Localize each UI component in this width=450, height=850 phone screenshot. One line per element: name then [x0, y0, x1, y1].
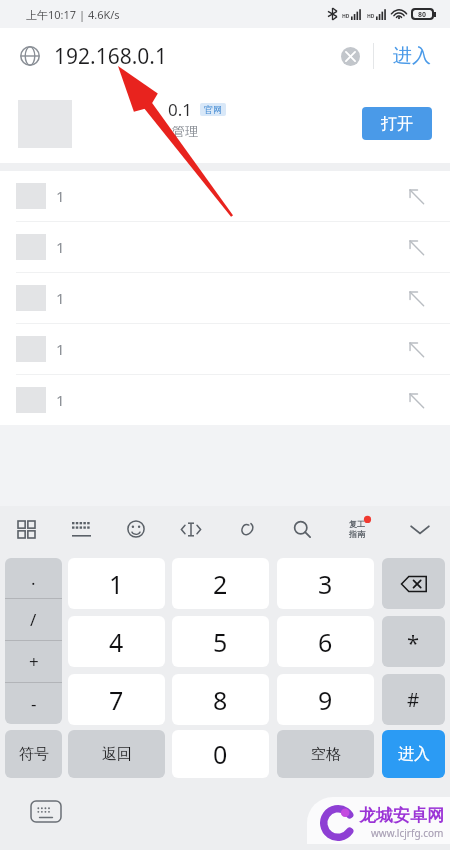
staticText: 2: [213, 567, 228, 601]
button[interactable]: 1: [68, 558, 165, 609]
staticText: 1: [56, 288, 65, 308]
staticText: 返回: [102, 745, 132, 764]
staticText: 指南: [349, 529, 365, 539]
staticText: 1: [109, 567, 124, 601]
staticText: 符号: [19, 745, 49, 764]
button[interactable]: 7: [68, 674, 165, 725]
button[interactable]: Clear: [327, 33, 373, 79]
button[interactable]: 9: [277, 674, 374, 725]
staticText: HD: [367, 13, 375, 20]
button[interactable]: Fill suggestion: [400, 384, 432, 416]
staticText: 龙城安卓网: [359, 805, 444, 826]
staticText: -: [31, 692, 37, 715]
button[interactable]: Fill suggestion: [400, 282, 432, 314]
button[interactable]: Emoji: [116, 509, 156, 549]
button[interactable]: Search: [282, 509, 322, 549]
staticText: 上午10:17 | 4.6K/s: [26, 7, 120, 22]
button[interactable]: 0: [172, 730, 269, 778]
button[interactable]: .: [5, 558, 62, 598]
button[interactable]: Hide keyboard: [400, 509, 440, 549]
staticText: 3: [318, 567, 333, 601]
button[interactable]: 1: [0, 375, 450, 425]
staticText: www.lcjrfg.com: [371, 826, 444, 840]
staticText: 6: [318, 625, 333, 659]
staticText: 5: [213, 625, 228, 659]
button[interactable]: 返回: [68, 730, 165, 778]
staticText: #: [407, 687, 420, 713]
staticText: 4: [109, 625, 124, 659]
button[interactable]: Backspace: [382, 558, 445, 609]
staticText: 1: [56, 390, 65, 410]
button[interactable]: *: [382, 616, 445, 667]
staticText: 官网: [204, 104, 222, 115]
button[interactable]: 进入: [382, 730, 445, 778]
staticText: 0.1: [168, 98, 193, 121]
staticText: 0: [213, 737, 228, 771]
button[interactable]: #: [382, 674, 445, 725]
staticText: 进入: [393, 44, 431, 68]
button[interactable]: 8: [172, 674, 269, 725]
staticText: 1: [56, 186, 65, 206]
button[interactable]: 1: [0, 324, 450, 374]
button[interactable]: /: [5, 599, 62, 640]
button[interactable]: Clipboard: [227, 509, 267, 549]
button[interactable]: 5: [172, 616, 269, 667]
button[interactable]: 1: [0, 171, 450, 221]
staticText: 9: [318, 683, 333, 717]
button[interactable]: 符号: [5, 730, 62, 778]
staticText: .: [31, 567, 36, 590]
button[interactable]: Fill suggestion: [400, 231, 432, 263]
button[interactable]: Guide: [337, 509, 377, 549]
staticText: *: [407, 627, 420, 657]
staticText: 复工: [349, 519, 365, 529]
button[interactable]: Apps: [6, 509, 46, 549]
button[interactable]: Keyboard layout: [61, 509, 101, 549]
button[interactable]: 1: [0, 222, 450, 272]
staticText: 空格: [311, 745, 341, 764]
staticText: 8: [213, 683, 228, 717]
staticText: 打开: [381, 114, 413, 134]
button[interactable]: -: [5, 683, 62, 724]
button[interactable]: 打开: [362, 107, 432, 140]
button[interactable]: 4: [68, 616, 165, 667]
staticText: 80: [418, 10, 427, 18]
staticText: 1: [56, 339, 65, 359]
button[interactable]: 6: [277, 616, 374, 667]
button[interactable]: +: [5, 641, 62, 682]
button[interactable]: Text edit: [171, 509, 211, 549]
button[interactable]: 3: [277, 558, 374, 609]
staticText: 7: [109, 683, 124, 717]
button[interactable]: 1: [0, 273, 450, 323]
button[interactable]: Fill suggestion: [400, 180, 432, 212]
button[interactable]: 进入: [374, 28, 450, 84]
staticText: +: [29, 650, 39, 673]
button[interactable]: 空格: [277, 730, 374, 778]
button[interactable]: Fill suggestion: [400, 333, 432, 365]
staticText: 192.168.0.1: [54, 42, 167, 71]
staticText: /: [30, 608, 37, 631]
staticText: 管理: [172, 123, 198, 139]
staticText: 进入: [398, 744, 430, 764]
button[interactable]: 2: [172, 558, 269, 609]
staticText: 1: [56, 237, 65, 257]
button[interactable]: Switch keyboard: [26, 798, 66, 824]
staticText: HD: [342, 13, 350, 20]
